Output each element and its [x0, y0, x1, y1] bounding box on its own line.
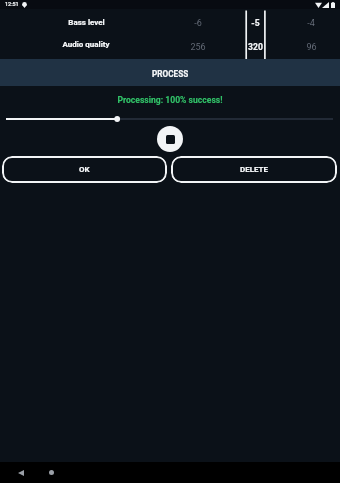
staticText: 12:51: [5, 1, 19, 7]
staticText: -5: [251, 18, 260, 28]
staticText: OK: [79, 165, 90, 174]
staticText: PROCESS: [152, 69, 189, 79]
button[interactable]: PROCESS: [0, 59, 340, 86]
button[interactable]: Home: [40, 462, 62, 483]
button[interactable]: OK: [2, 156, 167, 183]
button[interactable]: DELETE: [171, 156, 337, 183]
staticText: 320: [248, 42, 263, 52]
button[interactable]: Back: [10, 462, 31, 483]
button[interactable]: Stop: [157, 126, 183, 152]
staticText: 256: [190, 42, 206, 53]
staticText: Bass level: [68, 18, 105, 27]
staticText: -4: [307, 18, 315, 29]
staticText: Audio quality: [62, 40, 110, 49]
button[interactable]: [0, 113, 340, 125]
staticText: 96: [306, 42, 317, 53]
staticText: Processing: 100% success!: [0, 95, 340, 105]
staticText: -6: [194, 18, 202, 29]
staticText: DELETE: [240, 165, 269, 174]
